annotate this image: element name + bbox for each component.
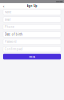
staticText: Confirm pwd bbox=[5, 47, 23, 51]
staticText: Name bbox=[5, 10, 12, 14]
staticText: ‹ bbox=[3, 3, 4, 8]
button[interactable]: Back bbox=[1, 4, 6, 8]
button[interactable]: Confirm pwd bbox=[3, 46, 61, 52]
staticText: Sign Up bbox=[26, 4, 37, 8]
button[interactable]: Next bbox=[3, 54, 61, 59]
staticText: Phone bbox=[5, 25, 15, 29]
staticText: Password bbox=[5, 40, 17, 43]
staticText: Email bbox=[5, 18, 11, 21]
button[interactable]: Phone bbox=[3, 24, 61, 30]
staticText: Next bbox=[29, 55, 35, 58]
staticText: Date of birth bbox=[5, 33, 23, 36]
button[interactable]: Date of birth bbox=[3, 32, 61, 37]
button[interactable]: Password bbox=[3, 39, 61, 45]
button[interactable]: Name bbox=[3, 9, 61, 15]
button[interactable]: Email bbox=[3, 17, 61, 22]
